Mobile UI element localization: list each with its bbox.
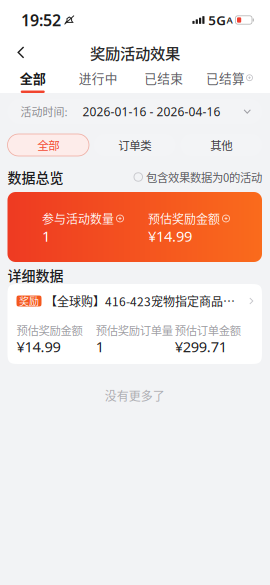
staticText: 1 bbox=[96, 337, 104, 356]
staticText: 2026-01-16 - 2026-04-16 bbox=[82, 103, 220, 119]
staticText: 预估奖励金额 bbox=[16, 322, 82, 338]
staticText: 订单类 bbox=[118, 137, 151, 153]
staticText: ¥14.99 bbox=[16, 337, 60, 356]
button[interactable]: 全部 bbox=[7, 134, 89, 156]
button[interactable]: 已结束 bbox=[131, 65, 196, 93]
staticText: 活动时间: bbox=[20, 104, 67, 119]
staticText: 包含效果数据为0的活动 bbox=[146, 169, 262, 185]
staticText: ¥299.71 bbox=[175, 337, 227, 356]
staticText: 奖励 bbox=[19, 294, 39, 308]
staticText: 预估奖励订单量 bbox=[96, 322, 173, 338]
staticText: 全部 bbox=[37, 137, 59, 153]
staticText: 预估订单金额 bbox=[175, 322, 241, 338]
button[interactable]: 奖励 bbox=[16, 294, 254, 308]
button[interactable]: 进行中 bbox=[65, 65, 131, 93]
staticText: 进行中 bbox=[79, 69, 118, 87]
button[interactable]: 其他 bbox=[180, 134, 262, 156]
staticText: 预估奖励金额 bbox=[148, 210, 220, 227]
staticText: 【全球购】416-423宠物指定商品… bbox=[45, 292, 235, 310]
button[interactable]: 已结算 bbox=[196, 65, 262, 93]
staticText: 全部 bbox=[20, 68, 46, 87]
staticText: 没有更多了 bbox=[105, 387, 165, 404]
staticText: 1 bbox=[42, 226, 50, 246]
staticText: 详细数据 bbox=[7, 265, 63, 285]
staticText: 数据总览 bbox=[7, 167, 63, 187]
staticText: 已结算 bbox=[206, 69, 245, 87]
button[interactable]: 订单类 bbox=[94, 134, 175, 156]
staticText: 19:52 bbox=[21, 9, 61, 31]
button[interactable]: Back bbox=[6, 37, 36, 67]
button[interactable]: 活动时间: bbox=[7, 99, 262, 124]
staticText: 奖励活动效果 bbox=[90, 41, 180, 64]
button[interactable]: 全部 bbox=[0, 65, 65, 93]
staticText: 5G bbox=[208, 11, 226, 29]
staticText: 已结束 bbox=[144, 69, 183, 87]
button[interactable]: 包含效果数据为0的活动 bbox=[134, 171, 262, 183]
staticText: A bbox=[226, 14, 232, 26]
staticText: ¥14.99 bbox=[148, 226, 192, 246]
staticText: 参与活动数量 bbox=[42, 210, 114, 227]
staticText: 其他 bbox=[210, 137, 232, 153]
